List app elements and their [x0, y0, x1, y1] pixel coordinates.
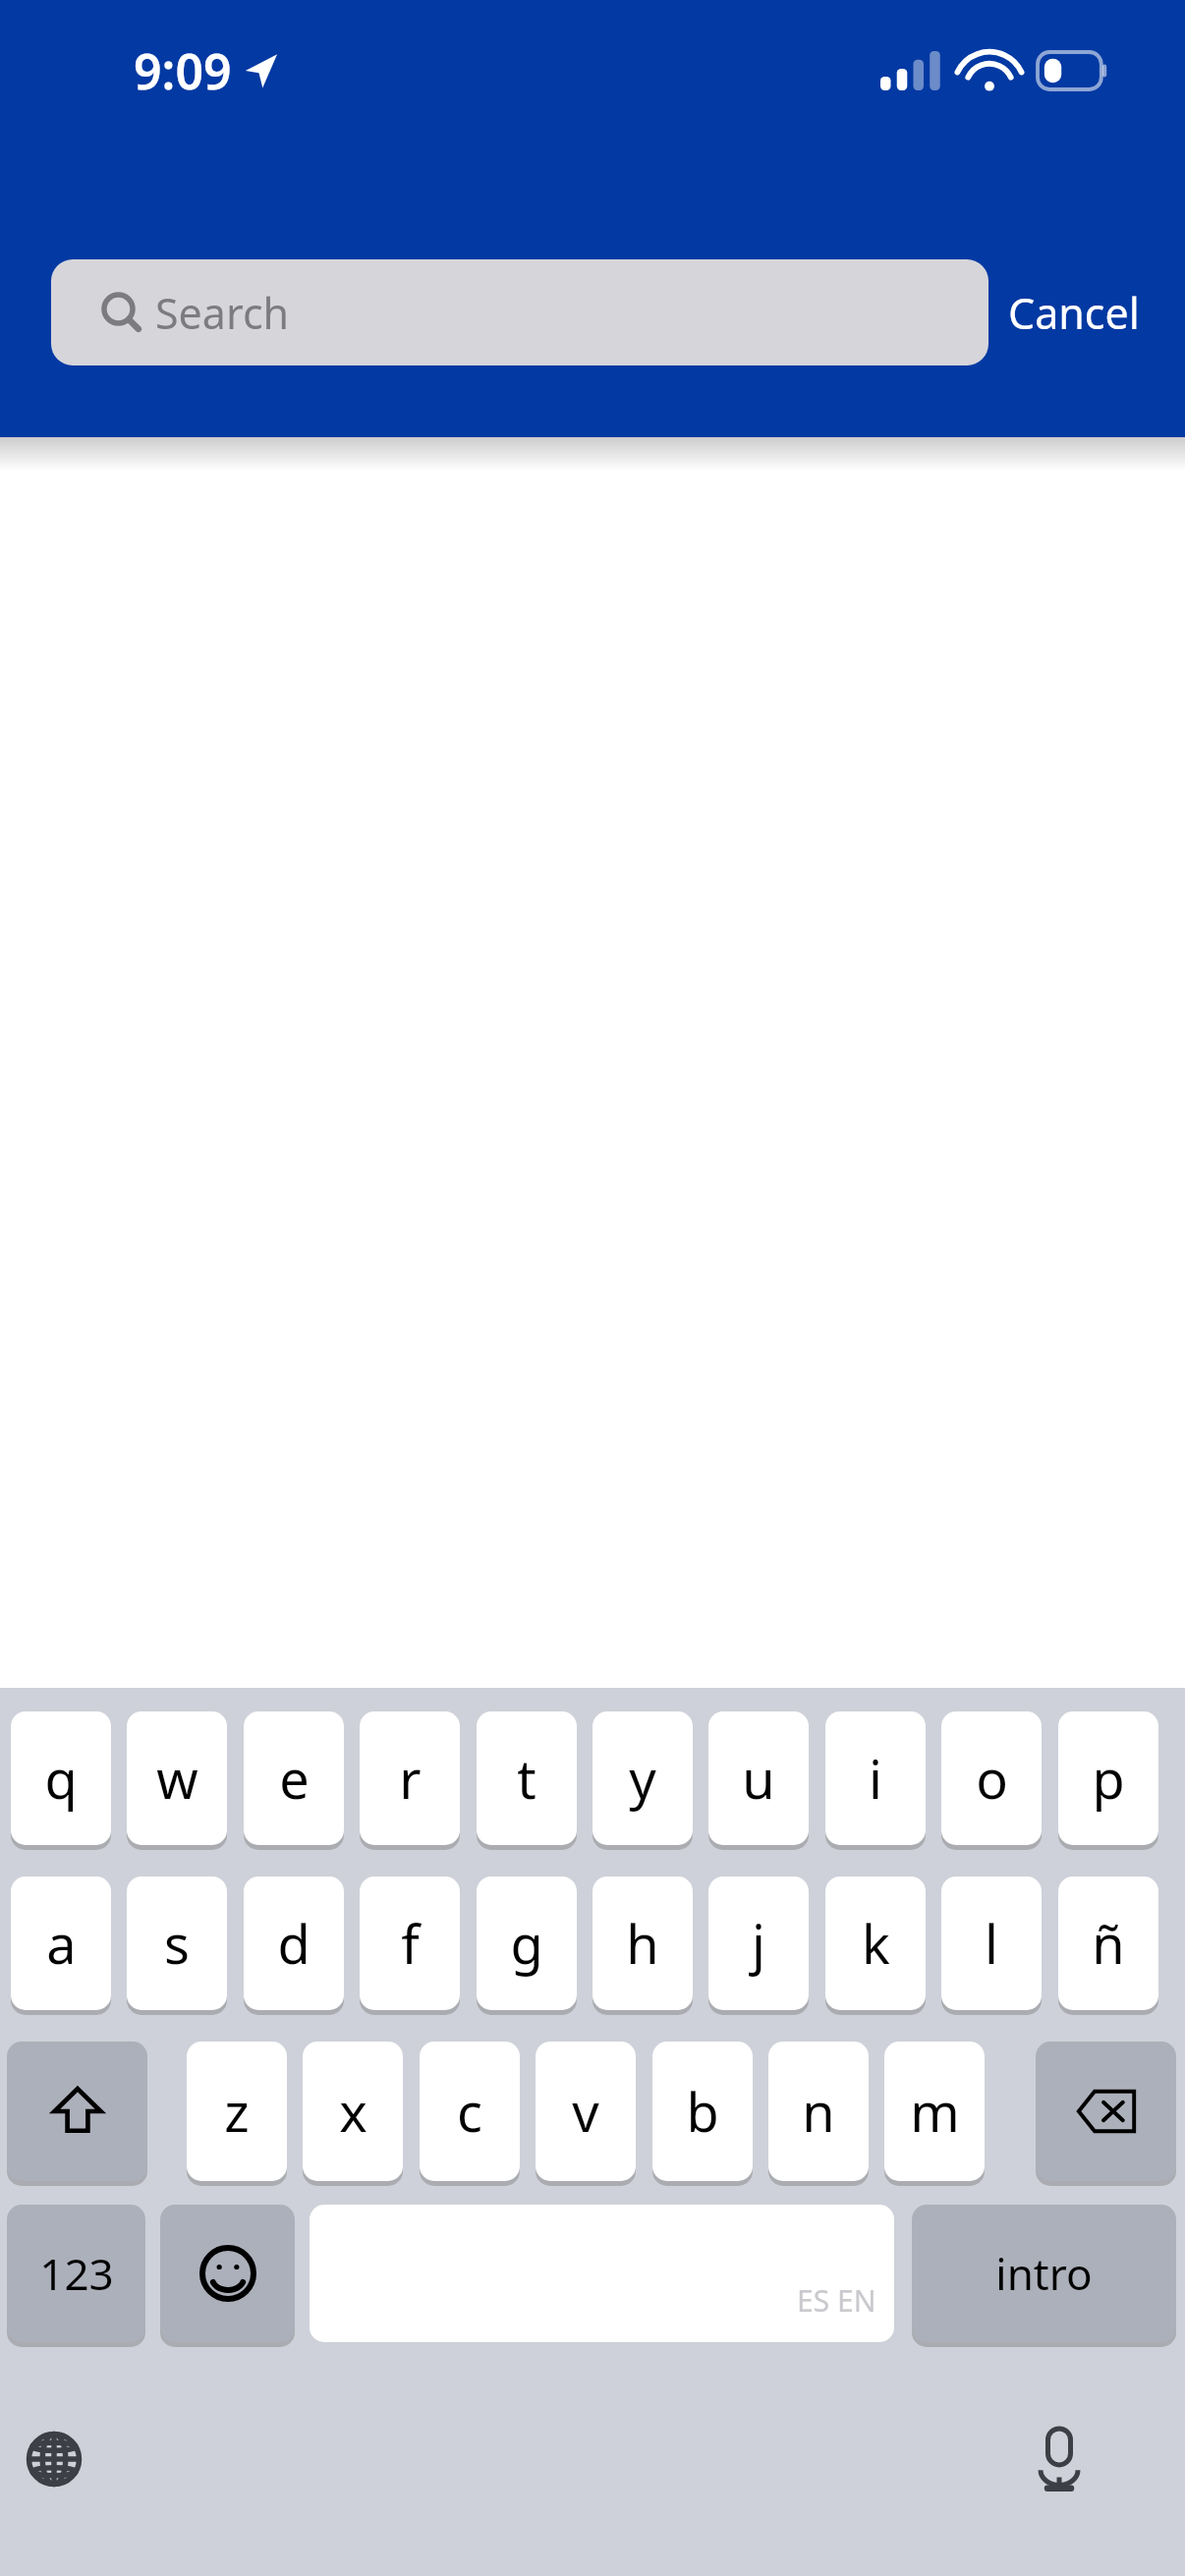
button[interactable]: g	[477, 1876, 577, 2010]
staticText: z	[224, 2075, 250, 2148]
staticText: n	[802, 2075, 835, 2148]
button[interactable]: Emoji	[160, 2205, 295, 2342]
button[interactable]: Change keyboard language	[22, 2427, 86, 2492]
button[interactable]: f	[360, 1876, 460, 2010]
staticText: v	[572, 2075, 599, 2148]
staticText: q	[44, 1742, 78, 1815]
button[interactable]: intro	[912, 2205, 1176, 2342]
staticText: ñ	[1092, 1907, 1125, 1980]
staticText: r	[399, 1742, 422, 1815]
button[interactable]: Dictation	[1027, 2427, 1092, 2492]
button[interactable]: l	[941, 1876, 1042, 2010]
button[interactable]: ñ	[1058, 1876, 1158, 2010]
staticText: Cancel	[1008, 284, 1140, 342]
button[interactable]: j	[708, 1876, 809, 2010]
button[interactable]: t	[477, 1711, 577, 1845]
staticText: x	[339, 2075, 367, 2148]
button[interactable]: i	[825, 1711, 926, 1845]
button[interactable]: d	[244, 1876, 344, 2010]
button[interactable]: e	[244, 1711, 344, 1845]
button[interactable]: h	[592, 1876, 693, 2010]
staticText: intro	[995, 2244, 1093, 2303]
staticText: g	[510, 1907, 543, 1980]
staticText: s	[164, 1907, 190, 1980]
button[interactable]: p	[1058, 1711, 1158, 1845]
staticText: k	[862, 1907, 890, 1980]
button[interactable]: o	[941, 1711, 1042, 1845]
button[interactable]: c	[420, 2042, 520, 2181]
staticText: y	[629, 1742, 656, 1815]
button[interactable]: v	[536, 2042, 636, 2181]
button[interactable]: a	[11, 1876, 111, 2010]
button[interactable]: x	[303, 2042, 403, 2181]
staticText: i	[869, 1742, 882, 1815]
staticText: c	[457, 2075, 482, 2148]
staticText: o	[976, 1742, 1008, 1815]
staticText: h	[626, 1907, 659, 1980]
staticText: 123	[39, 2244, 114, 2303]
button[interactable]: q	[11, 1711, 111, 1845]
staticText: 9:09	[134, 37, 232, 104]
button[interactable]: b	[652, 2042, 753, 2181]
button[interactable]: z	[187, 2042, 287, 2181]
staticText: Search	[155, 284, 290, 342]
staticText: b	[686, 2075, 719, 2148]
staticText: ES EN	[797, 2280, 876, 2321]
button[interactable]: n	[768, 2042, 869, 2181]
button[interactable]: 123	[7, 2205, 145, 2342]
button[interactable]: Search	[51, 259, 988, 365]
button[interactable]: Backspace	[1036, 2042, 1176, 2181]
staticText: j	[752, 1907, 765, 1980]
staticText: f	[401, 1907, 420, 1980]
staticText: d	[277, 1907, 310, 1980]
button[interactable]: w	[127, 1711, 227, 1845]
button[interactable]: y	[592, 1711, 693, 1845]
button[interactable]: Cancel	[988, 270, 1159, 356]
staticText: a	[46, 1907, 77, 1980]
staticText: u	[742, 1742, 775, 1815]
button[interactable]: Space	[310, 2205, 894, 2342]
staticText: e	[279, 1742, 310, 1815]
button[interactable]: s	[127, 1876, 227, 2010]
button[interactable]: r	[360, 1711, 460, 1845]
button[interactable]: k	[825, 1876, 926, 2010]
staticText: w	[156, 1742, 198, 1815]
button[interactable]: m	[884, 2042, 985, 2181]
staticText: t	[517, 1742, 536, 1815]
staticText: m	[910, 2075, 960, 2148]
button[interactable]: Shift	[7, 2042, 147, 2181]
staticText: l	[985, 1907, 998, 1980]
button[interactable]: u	[708, 1711, 809, 1845]
staticText: p	[1092, 1742, 1125, 1815]
